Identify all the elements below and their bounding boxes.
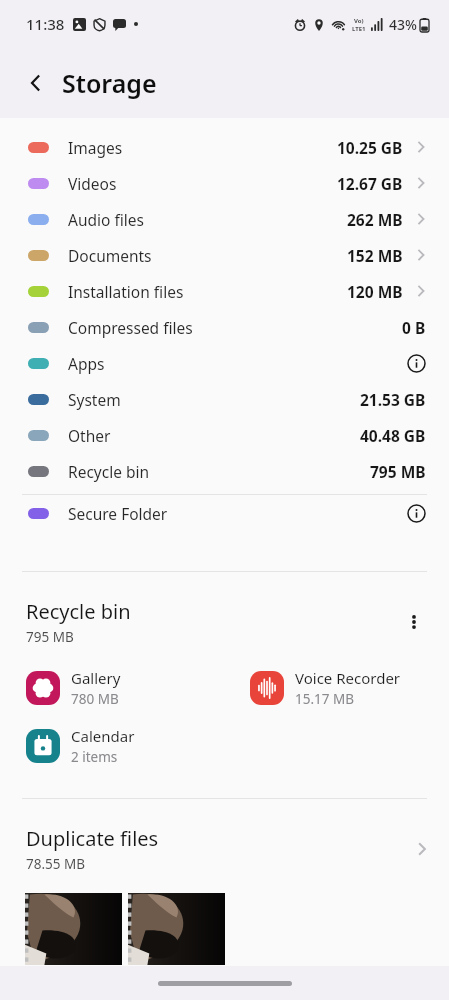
staticText: Voice Recorder (295, 668, 401, 688)
staticText: LTE1 (352, 25, 366, 33)
button[interactable]: Calendar (0, 726, 224, 766)
staticText: Images (68, 137, 123, 158)
button[interactable]: Voice Recorder (224, 668, 449, 708)
staticText: 43% (389, 15, 417, 34)
button[interactable]: Info about Apps (403, 350, 429, 376)
button[interactable]: System (0, 381, 449, 417)
staticText: Compressed files (68, 317, 193, 338)
button[interactable]: Compressed files (0, 309, 449, 345)
button[interactable]: Documents (0, 237, 449, 273)
staticText: Documents (68, 245, 152, 266)
button[interactable]: Info about Secure Folder (403, 500, 429, 526)
button[interactable]: Recycle bin (0, 453, 449, 489)
staticText: 40.48 GB (360, 425, 426, 446)
staticText: 15.17 MB (295, 690, 355, 708)
button[interactable]: More options (397, 605, 431, 639)
button[interactable]: Apps (0, 345, 449, 381)
button[interactable]: Images (0, 129, 449, 165)
button[interactable]: Other (0, 417, 449, 453)
button[interactable]: Gallery (0, 668, 224, 708)
button[interactable]: Videos (0, 165, 449, 201)
button[interactable]: Duplicate files (0, 825, 449, 873)
staticText: 795 MB (26, 628, 74, 646)
staticText: 2 items (71, 748, 118, 766)
staticText: Gallery (71, 668, 121, 688)
staticText: Duplicate files (26, 825, 159, 852)
staticText: 11:38 (26, 14, 65, 34)
staticText: Storage (62, 66, 157, 100)
button[interactable]: Installation files (0, 273, 449, 309)
staticText: 795 MB (370, 461, 426, 482)
staticText: 78.55 MB (26, 855, 86, 873)
staticText: 262 MB (347, 209, 403, 230)
staticText: 10.25 GB (337, 137, 403, 158)
button[interactable]: Home (158, 981, 292, 986)
staticText: 12.67 GB (337, 173, 403, 194)
staticText: Calendar (71, 726, 135, 746)
staticText: System (68, 389, 121, 410)
staticText: Apps (68, 353, 105, 374)
staticText: 780 MB (71, 690, 119, 708)
staticText: Audio files (68, 209, 144, 230)
staticText: Other (68, 425, 111, 446)
staticText: 152 MB (347, 245, 403, 266)
button[interactable]: Secure Folder (0, 495, 449, 531)
button[interactable]: Audio files (0, 201, 449, 237)
staticText: Vo) (354, 17, 364, 25)
staticText: Videos (68, 173, 117, 194)
staticText: 21.53 GB (360, 389, 426, 410)
button[interactable]: Back (18, 65, 54, 101)
staticText: Secure Folder (68, 503, 168, 524)
staticText: 0 B (402, 317, 426, 338)
button[interactable]: Recycle bin (0, 598, 449, 646)
staticText: Installation files (68, 281, 184, 302)
staticText: 120 MB (347, 281, 403, 302)
staticText: Recycle bin (68, 461, 150, 482)
staticText: Recycle bin (26, 598, 131, 625)
